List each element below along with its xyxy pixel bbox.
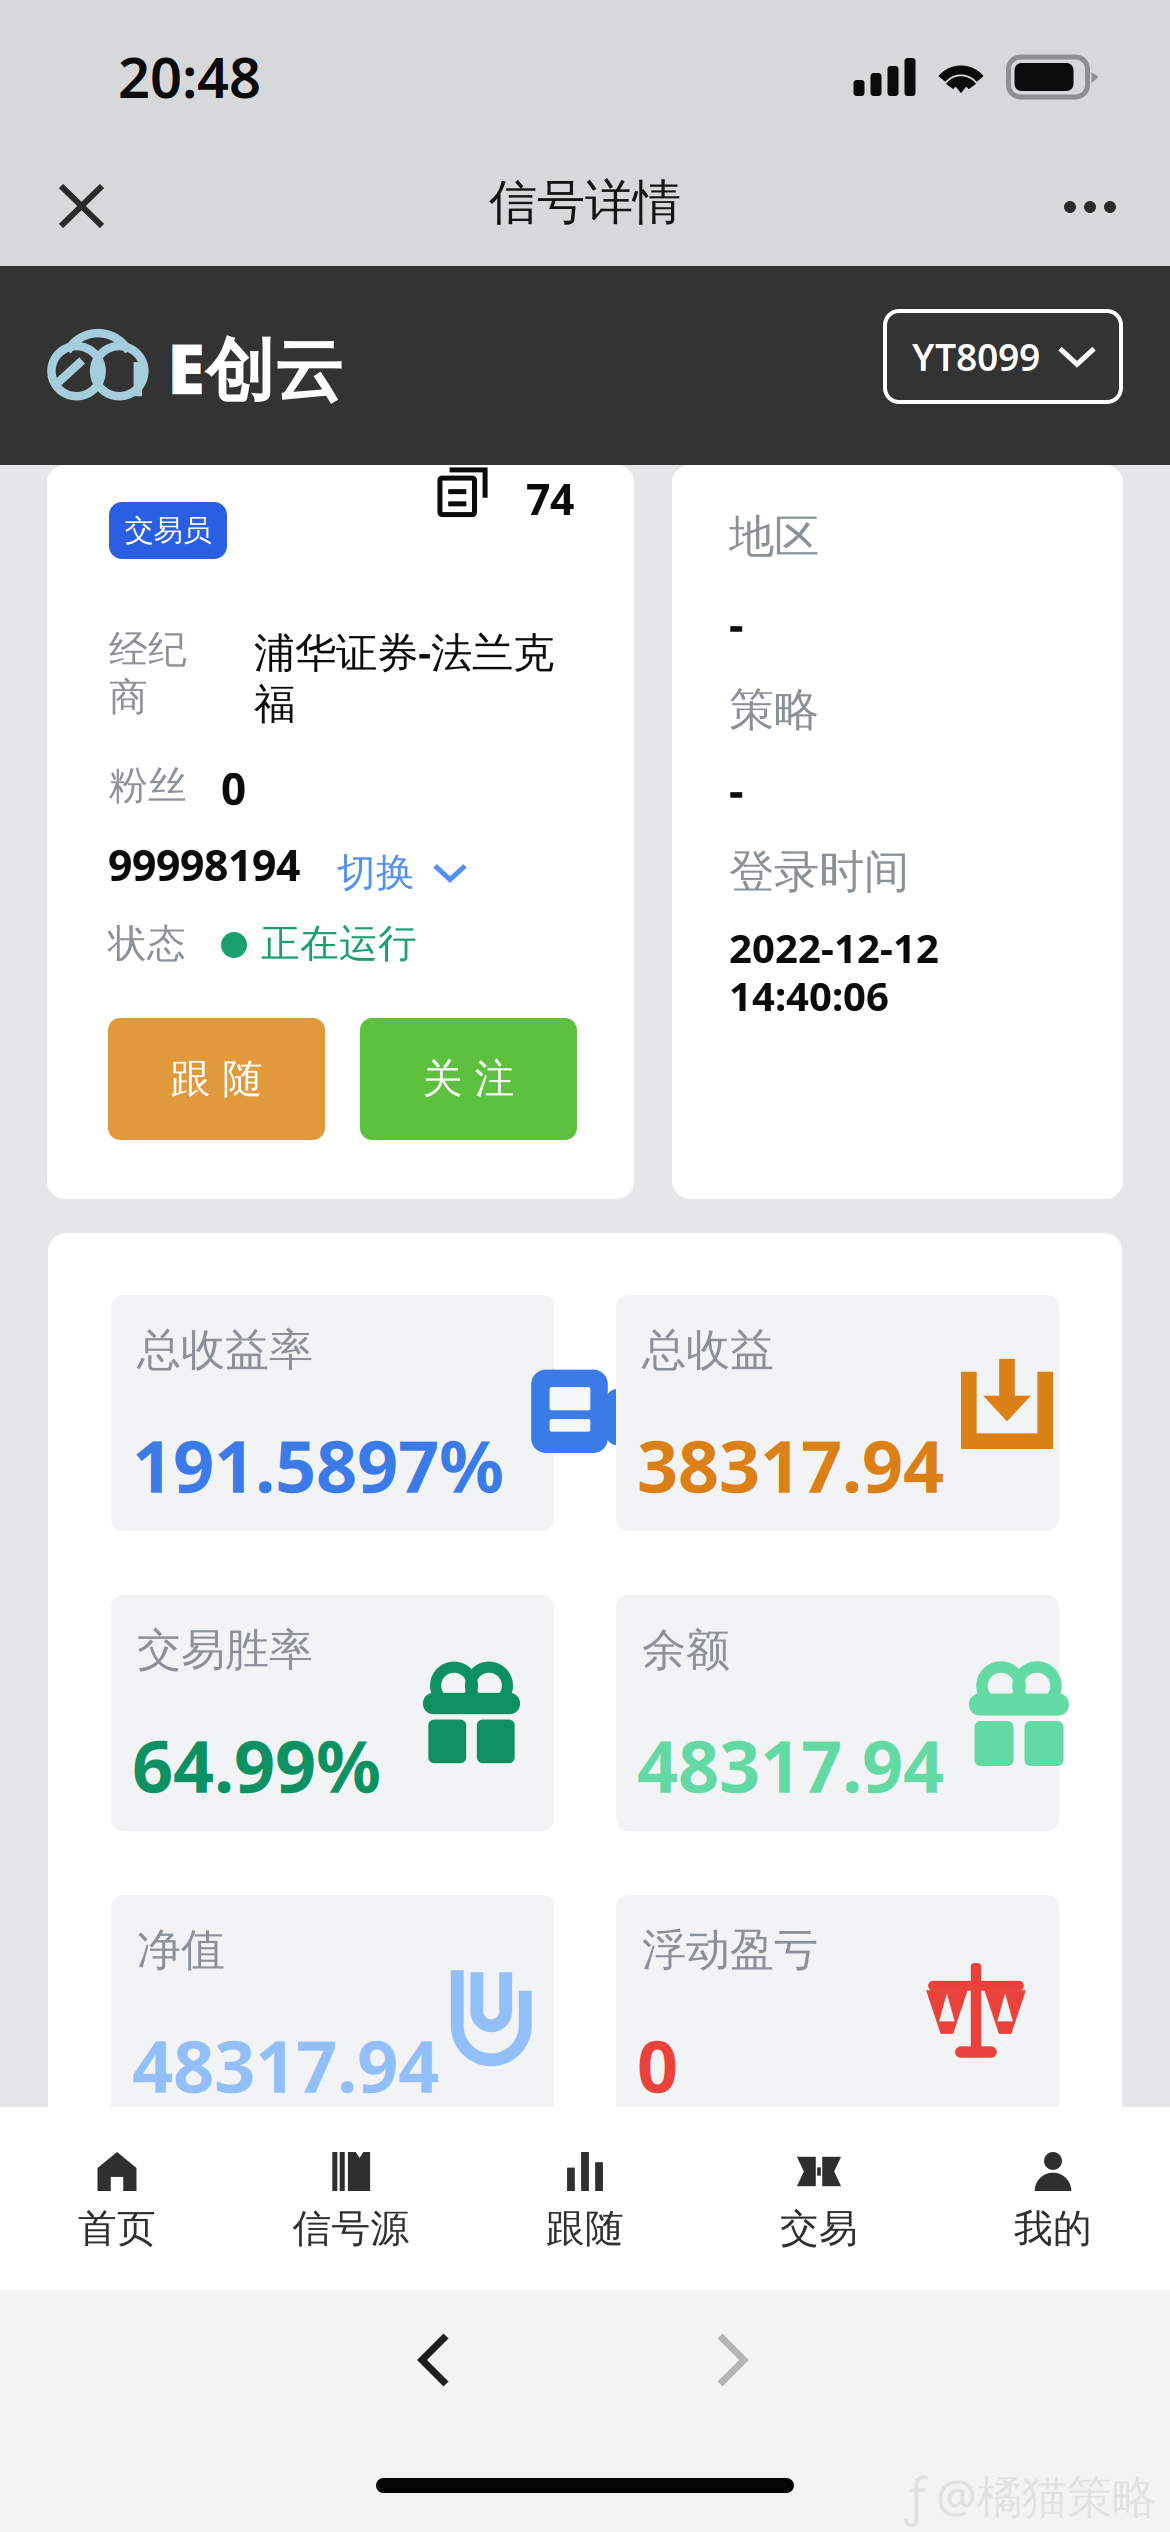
button[interactable]: 切换 (337, 841, 465, 904)
staticText: 粉丝 (109, 762, 187, 809)
button[interactable]: 跟随 (468, 2107, 702, 2290)
staticText: 99998194 (108, 836, 300, 893)
staticText: 切换 (337, 849, 415, 896)
staticText: 交易 (780, 2205, 858, 2252)
staticText: - (729, 759, 744, 819)
staticText: 关 注 (422, 1054, 514, 1103)
button[interactable]: 总收益率 (111, 1295, 554, 1531)
button[interactable]: 交易 (702, 2107, 936, 2290)
staticText: 2022-12-12 (729, 921, 939, 974)
staticText: 38317.94 (637, 1417, 944, 1513)
staticText: 191.5897% (132, 1417, 504, 1513)
staticText: 登录时间 (729, 844, 909, 900)
staticText: 余额 (642, 1623, 730, 1677)
staticText: @橘猫策略 (936, 2465, 1157, 2526)
staticText: 74 (526, 470, 574, 527)
button[interactable]: YT8099 (885, 311, 1121, 402)
button[interactable]: 总收益 (616, 1295, 1059, 1531)
staticText: ƒ (905, 2462, 926, 2529)
staticText: 信号详情 (489, 173, 681, 232)
staticText: 总收益率 (137, 1323, 313, 1377)
staticText: 净值 (137, 1923, 225, 1977)
staticText: 0 (637, 2017, 678, 2113)
staticText: 20:48 (118, 39, 261, 113)
button[interactable]: 首页 (0, 2107, 234, 2290)
staticText: 信号源 (292, 2205, 409, 2252)
button[interactable]: Close (25, 156, 138, 256)
staticText: 交易员 (124, 512, 211, 548)
staticText: 0 (221, 759, 246, 817)
button[interactable]: More (1030, 161, 1150, 253)
staticText: 正在运行 (261, 920, 417, 967)
staticText: 我的 (1014, 2205, 1092, 2252)
staticText: 经纪商 (109, 626, 187, 721)
button[interactable]: 余额 (616, 1595, 1059, 1831)
staticText: 64.99% (132, 1717, 381, 1813)
staticText: 地区 (729, 509, 819, 565)
button[interactable]: 跟 随 (108, 1018, 325, 1140)
button[interactable]: 关 注 (360, 1018, 577, 1140)
button[interactable]: 交易胜率 (111, 1595, 554, 1831)
staticText: 48317.94 (637, 1717, 944, 1813)
staticText: 状态 (108, 920, 186, 967)
staticText: 浮动盈亏 (642, 1923, 818, 1977)
staticText: 14:40:06 (729, 969, 889, 1022)
button[interactable]: 浮动盈亏 (616, 1895, 1059, 2131)
staticText: 交易胜率 (137, 1623, 313, 1677)
button[interactable]: Forward (690, 2310, 774, 2410)
staticText: YT8099 (912, 332, 1040, 381)
button[interactable]: 净值 (111, 1895, 554, 2131)
staticText: 跟随 (546, 2205, 624, 2252)
staticText: E创云 (167, 321, 343, 414)
button[interactable]: Back (392, 2310, 476, 2410)
staticText: 跟 随 (170, 1054, 262, 1103)
staticText: 策略 (729, 682, 819, 738)
staticText: 浦华证券-法兰克福 (254, 624, 554, 730)
staticText: 48317.94 (132, 2017, 439, 2113)
staticText: 总收益 (642, 1323, 774, 1377)
button[interactable]: 我的 (936, 2107, 1170, 2290)
staticText: 首页 (78, 2205, 156, 2252)
staticText: - (729, 593, 744, 653)
button[interactable]: 信号源 (234, 2107, 468, 2290)
